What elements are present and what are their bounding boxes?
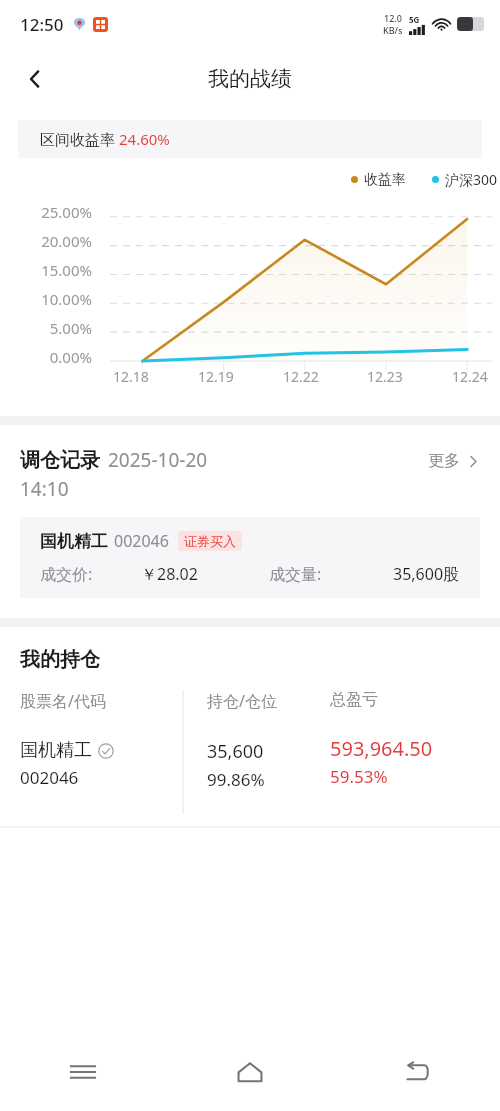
staticText: KB/s (383, 24, 403, 36)
staticText: 证券买入 (184, 533, 236, 549)
button[interactable]: Home (166, 1033, 333, 1111)
staticText: 沪深300 (445, 170, 498, 189)
staticText: 成交价: (40, 563, 93, 585)
staticText: 15.00% (0, 260, 92, 280)
staticText: 区间收益率 (40, 129, 119, 149)
staticText: 国机精工 (40, 531, 108, 552)
staticText: 调仓记录 (20, 448, 100, 473)
staticText: 总盈亏 (330, 690, 378, 710)
staticText: 5.00% (0, 318, 92, 338)
staticText: 更多 (428, 451, 460, 471)
staticText: 10.00% (0, 289, 92, 309)
staticText: 12.19 (198, 367, 234, 386)
staticText: ￥28.02 (141, 563, 198, 585)
button[interactable]: 区间收益率 (18, 120, 482, 158)
staticText: 股票名/代码 (20, 690, 106, 712)
staticText: 0.00% (0, 347, 92, 367)
button[interactable]: Back (12, 56, 58, 102)
button[interactable]: Recent apps (0, 1033, 166, 1111)
button[interactable]: Back (333, 1033, 500, 1111)
button[interactable]: 国机精工 (20, 517, 480, 598)
staticText: 12.0 (384, 12, 402, 24)
staticText: 35,600 (207, 739, 264, 764)
staticText: 成交量: (269, 563, 322, 585)
staticText: 002046 (20, 766, 79, 789)
staticText: 12:50 (20, 13, 64, 36)
staticText: 593,964.50 (330, 735, 433, 762)
staticText: 12.18 (113, 367, 149, 386)
staticText: 我的战绩 (208, 66, 292, 92)
staticText: 12.22 (283, 367, 319, 386)
staticText: 12.23 (367, 367, 403, 386)
staticText: 99.86% (207, 768, 265, 791)
staticText: 24.60% (119, 129, 170, 149)
staticText: 35,600股 (393, 563, 460, 585)
staticText: 5G (409, 14, 420, 25)
staticText: 国机精工 (20, 739, 92, 762)
button[interactable]: 更多 (418, 449, 480, 475)
staticText: 我的持仓 (20, 647, 100, 672)
staticText: 59.53% (330, 765, 388, 788)
staticText: 收益率 (364, 171, 406, 189)
staticText: 002046 (114, 530, 169, 552)
staticText: 14:10 (20, 476, 69, 502)
staticText: 2025-10-20 (108, 447, 208, 473)
staticText: 持仓/仓位 (207, 690, 277, 712)
staticText: 20.00% (0, 231, 92, 251)
staticText: 12.24 (452, 367, 488, 386)
staticText: 25.00% (0, 202, 92, 222)
